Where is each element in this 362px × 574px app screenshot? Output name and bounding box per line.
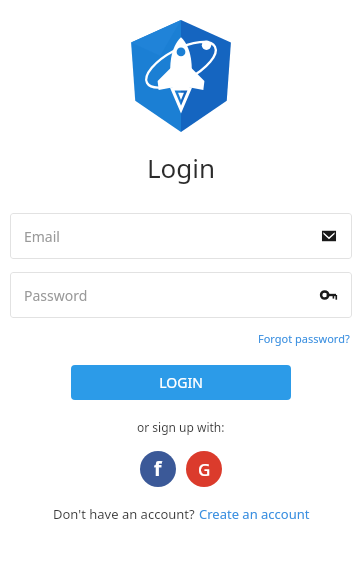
button[interactable]: Create an account (199, 505, 310, 523)
button[interactable]: Sign up with Facebook (140, 451, 176, 487)
staticText: Email (24, 227, 320, 246)
other: Password (320, 286, 338, 304)
staticText: Create an account (199, 505, 310, 523)
button[interactable]: LOGIN (71, 365, 291, 400)
staticText: LOGIN (159, 373, 203, 392)
button[interactable]: Password (10, 272, 352, 318)
button[interactable]: Email (10, 213, 352, 259)
button[interactable]: Forgot password? (256, 328, 352, 349)
staticText: Password (24, 286, 320, 305)
other: Email (320, 227, 338, 245)
staticText: Forgot password? (258, 331, 350, 346)
staticText: G (198, 458, 211, 481)
staticText: or sign up with: (137, 419, 225, 435)
staticText: Login (147, 150, 216, 185)
staticText: Don't have an account? (53, 505, 199, 523)
staticText: f (154, 456, 162, 482)
button[interactable]: Sign up with Google (186, 451, 222, 487)
